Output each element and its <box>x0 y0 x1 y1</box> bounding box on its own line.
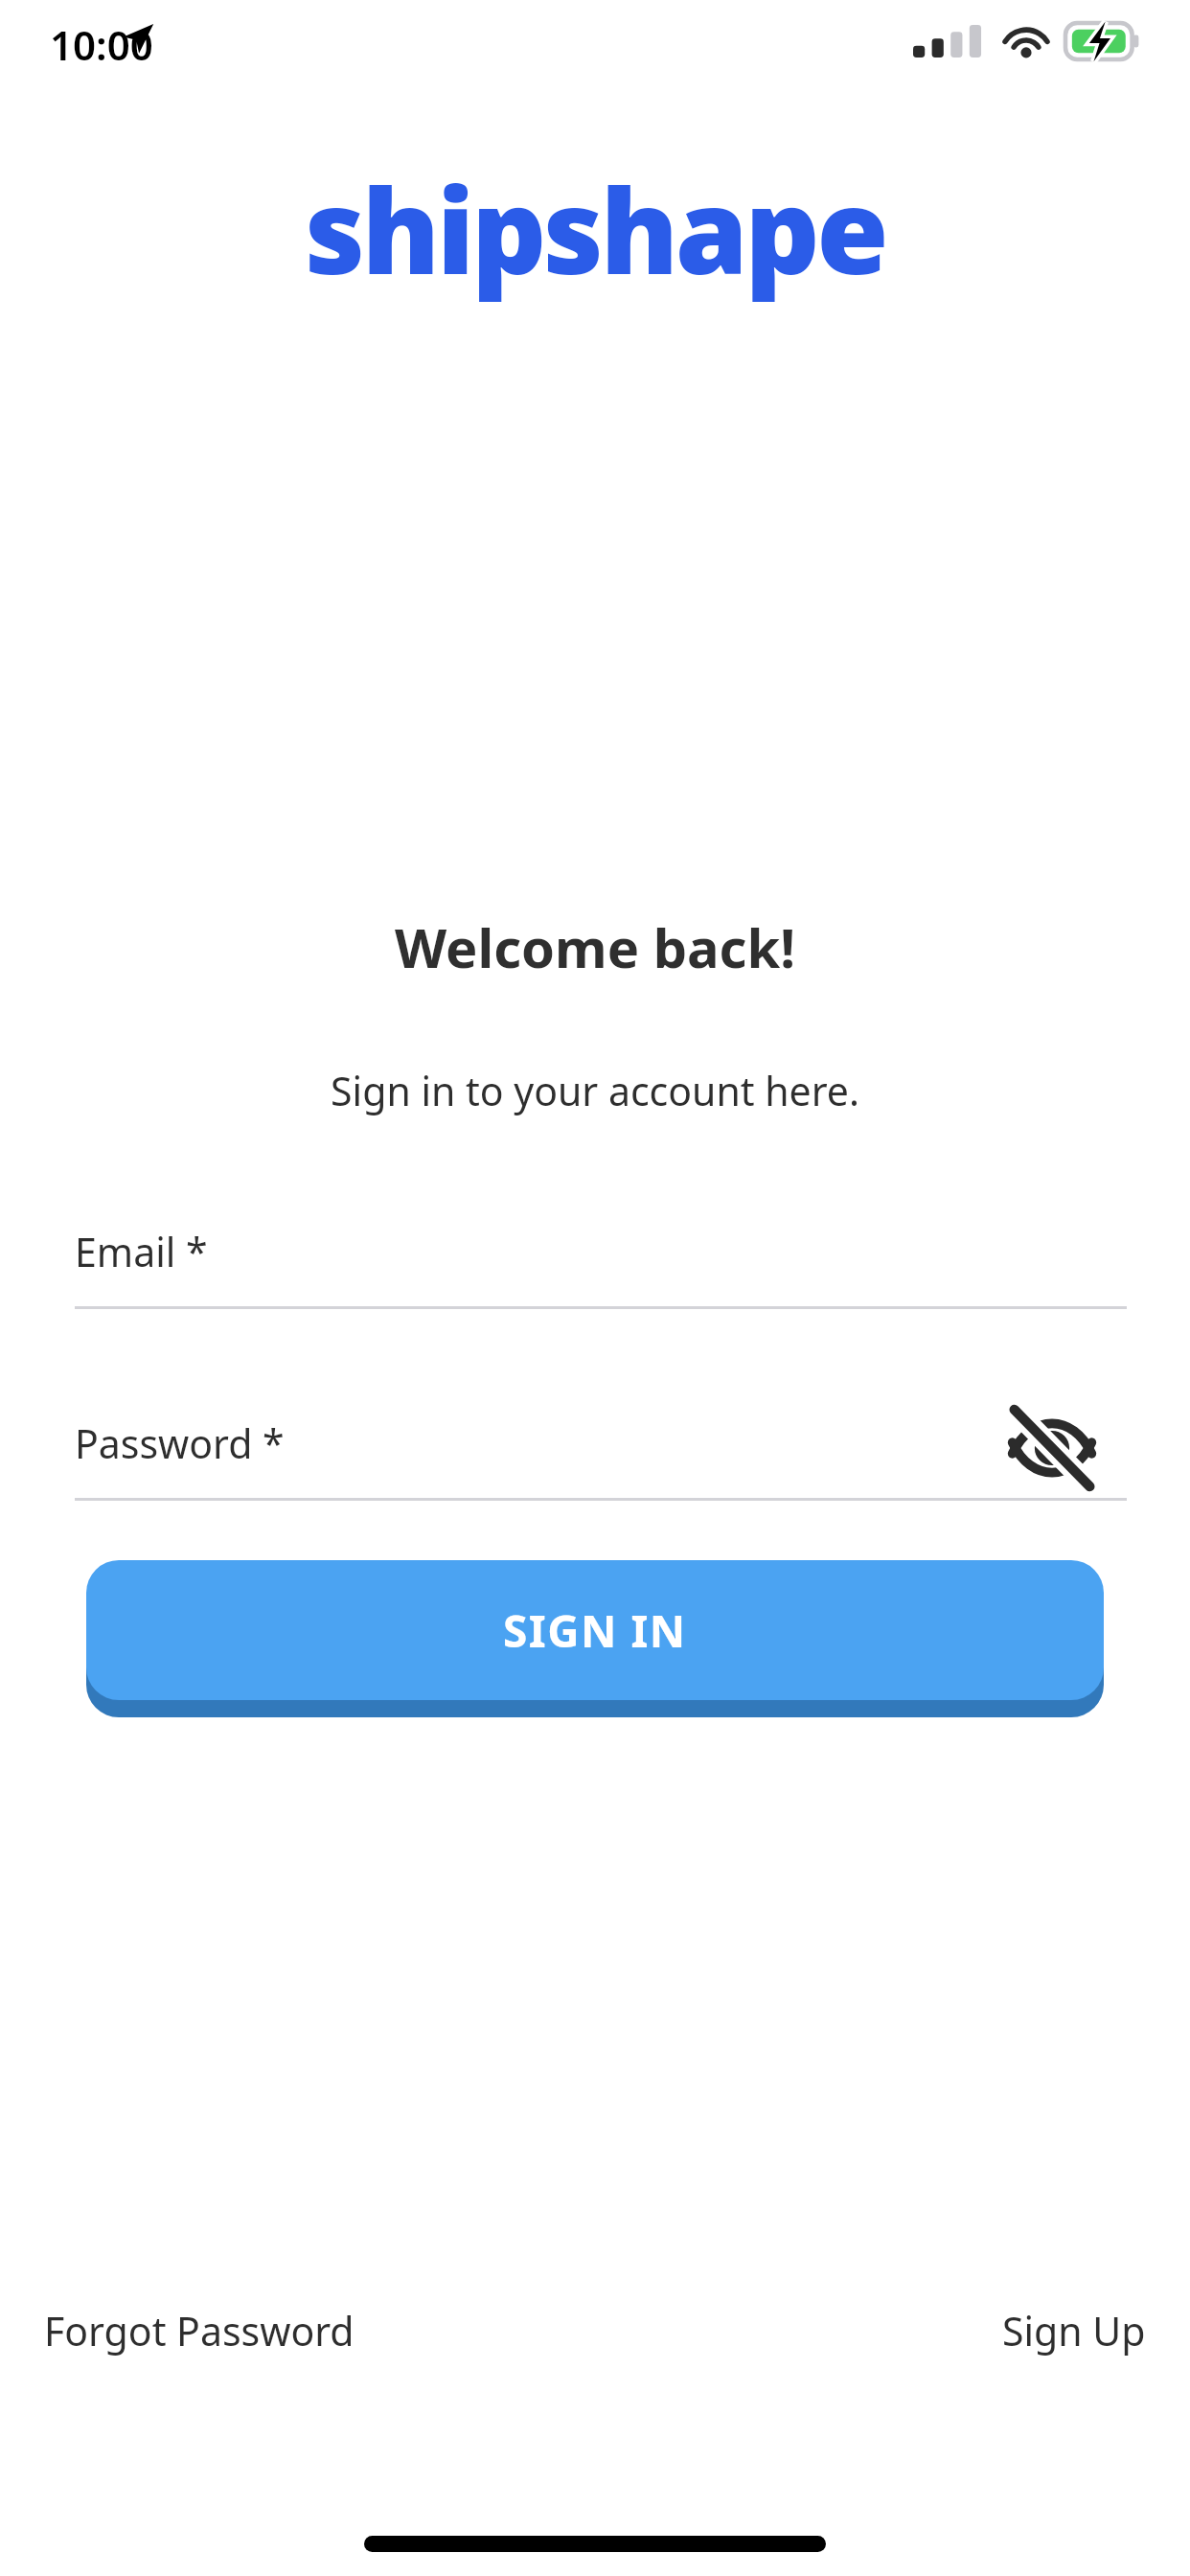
staticText: 10:00 <box>50 17 153 72</box>
button[interactable]: Sign Up <box>998 2300 1150 2361</box>
button[interactable]: Password * <box>75 1403 1127 1501</box>
staticText: Email * <box>75 1225 208 1278</box>
staticText: Sign in to your account here. <box>0 1064 1190 1117</box>
button[interactable]: Show password <box>987 1395 1117 1501</box>
button[interactable]: SIGN IN <box>86 1560 1104 1721</box>
button[interactable]: Email * <box>75 1211 1127 1309</box>
staticText: Sign Up <box>1002 2304 1146 2357</box>
staticText: Password * <box>75 1416 285 1470</box>
staticText: shipshape <box>0 149 1190 309</box>
staticText: Forgot Password <box>44 2304 355 2357</box>
staticText: SIGN IN <box>503 1600 687 1661</box>
button[interactable]: Forgot Password <box>40 2300 358 2361</box>
staticText: Welcome back! <box>0 910 1190 983</box>
